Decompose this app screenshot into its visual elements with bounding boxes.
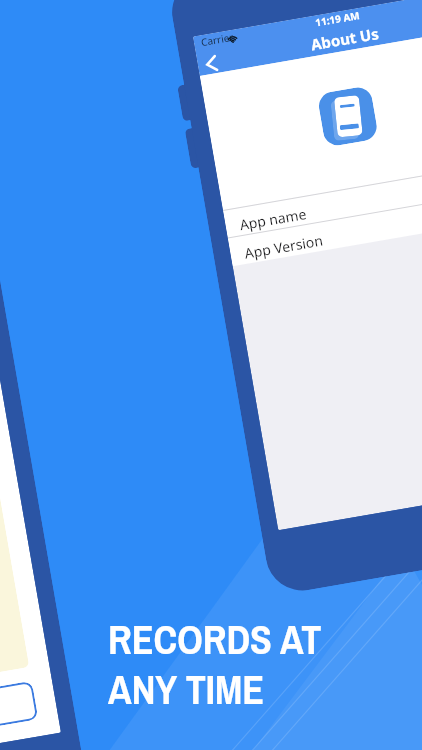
button[interactable]: App name: [238, 204, 308, 234]
button[interactable]: Back: [205, 55, 218, 73]
staticText: RECORDS AT ANY TIME: [108, 613, 322, 716]
button[interactable]: App Version: [243, 230, 325, 263]
staticText: Carrier: [200, 30, 235, 49]
button[interactable]: Add Reminder: [0, 681, 38, 750]
staticText: 11:19 AM: [314, 8, 361, 29]
staticText: About Us: [309, 23, 381, 54]
